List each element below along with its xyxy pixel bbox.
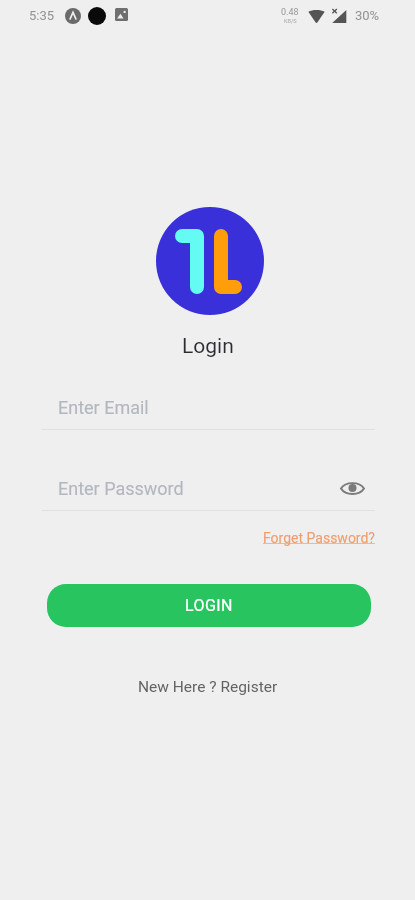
staticText: Enter Email bbox=[58, 397, 149, 418]
staticText: New Here ? Register bbox=[138, 678, 278, 696]
button[interactable]: Enter Email bbox=[42, 396, 375, 430]
staticText: Forget Password? bbox=[263, 530, 375, 546]
button[interactable]: Enter Password bbox=[42, 477, 375, 511]
staticText: Enter Password bbox=[58, 478, 184, 499]
button[interactable]: LOGIN bbox=[47, 584, 371, 627]
staticText: LOGIN bbox=[185, 596, 233, 615]
button[interactable]: Show password bbox=[337, 473, 367, 503]
button[interactable]: Forget Password? bbox=[261, 528, 377, 548]
staticText: Login bbox=[182, 334, 234, 359]
button[interactable]: New Here ? Register bbox=[132, 676, 284, 698]
staticText: KB/S bbox=[284, 18, 297, 24]
staticText: 30% bbox=[355, 8, 380, 23]
staticText: 0.48 bbox=[281, 7, 299, 18]
other: App logo bbox=[156, 207, 264, 315]
staticText: 5:35 bbox=[29, 8, 55, 23]
